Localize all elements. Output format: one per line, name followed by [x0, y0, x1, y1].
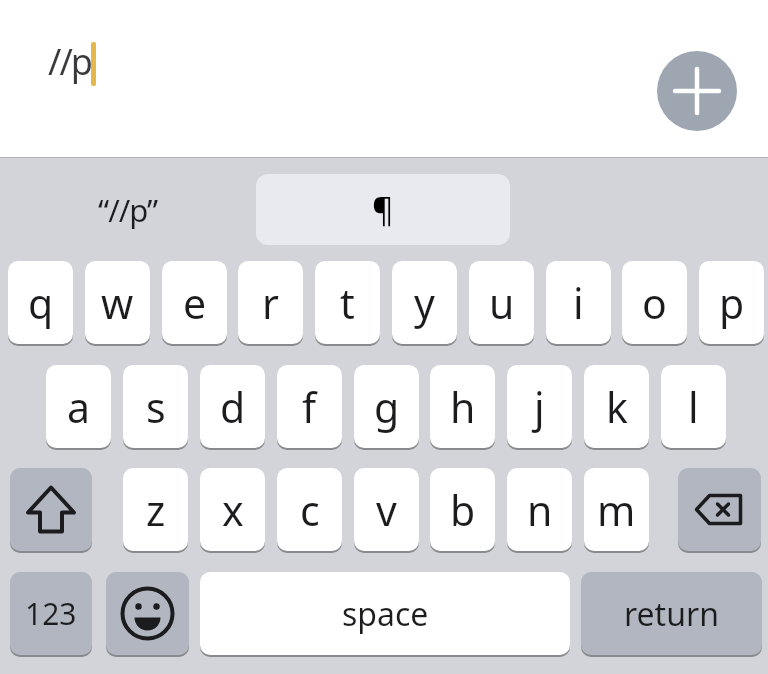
staticText: i — [573, 275, 584, 331]
staticText: l — [688, 379, 699, 435]
button[interactable]: m — [584, 468, 649, 551]
button[interactable]: o — [622, 261, 687, 344]
staticText: space — [342, 592, 429, 636]
staticText: s — [146, 379, 166, 435]
button[interactable] — [678, 468, 761, 551]
staticText: p — [719, 275, 745, 331]
staticText: return — [624, 592, 719, 636]
staticText: y — [414, 275, 435, 331]
button[interactable]: c — [277, 468, 342, 551]
staticText: z — [146, 482, 166, 538]
button[interactable]: f — [277, 365, 342, 448]
staticText: f — [302, 379, 317, 435]
button[interactable]: n — [507, 468, 572, 551]
button[interactable]: space — [200, 572, 570, 655]
staticText: o — [642, 275, 667, 331]
button[interactable]: h — [430, 365, 495, 448]
button[interactable]: a — [46, 365, 111, 448]
button[interactable]: q — [8, 261, 73, 344]
button[interactable]: s — [123, 365, 188, 448]
button[interactable]: 123 — [10, 572, 92, 655]
button[interactable]: j — [507, 365, 572, 448]
staticText: a — [67, 379, 91, 435]
button[interactable]: v — [354, 468, 419, 551]
staticText: g — [374, 379, 400, 435]
staticText: x — [222, 482, 244, 538]
staticText: b — [450, 482, 476, 538]
button[interactable] — [106, 572, 189, 655]
staticText: r — [262, 275, 279, 331]
button[interactable]: i — [546, 261, 611, 344]
staticText: u — [489, 275, 515, 331]
button[interactable]: w — [85, 261, 150, 344]
button[interactable] — [10, 468, 92, 551]
button[interactable]: t — [315, 261, 380, 344]
staticText: ¶ — [372, 187, 394, 232]
button[interactable]: g — [354, 365, 419, 448]
staticText: “//p” — [98, 189, 158, 231]
button[interactable]: return — [581, 572, 762, 655]
staticText: w — [101, 275, 134, 331]
staticText: j — [534, 379, 545, 435]
staticText: v — [376, 482, 397, 538]
button[interactable]: e — [162, 261, 227, 344]
button[interactable]: z — [123, 468, 188, 551]
staticText: q — [28, 275, 54, 331]
staticText: d — [220, 379, 246, 435]
staticText: k — [606, 379, 628, 435]
button[interactable]: b — [430, 468, 495, 551]
button[interactable]: d — [200, 365, 265, 448]
button[interactable]: y — [392, 261, 457, 344]
staticText: //p — [48, 37, 91, 86]
button[interactable]: ¶ — [256, 174, 510, 245]
button[interactable]: k — [584, 365, 649, 448]
button[interactable]: x — [200, 468, 265, 551]
button[interactable]: “//p” — [64, 174, 192, 245]
staticText: t — [340, 275, 355, 331]
staticText: e — [183, 275, 207, 331]
staticText: 123 — [25, 593, 77, 634]
staticText: m — [597, 482, 636, 538]
staticText: n — [527, 482, 553, 538]
button[interactable]: p — [699, 261, 764, 344]
button[interactable]: l — [661, 365, 726, 448]
staticText: h — [450, 379, 476, 435]
button[interactable] — [657, 51, 737, 131]
staticText: c — [300, 482, 320, 538]
button[interactable]: u — [469, 261, 534, 344]
button[interactable]: r — [238, 261, 303, 344]
